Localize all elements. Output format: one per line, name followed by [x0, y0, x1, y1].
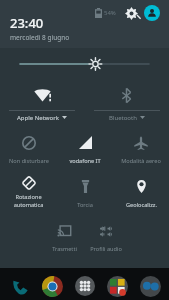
button[interactable]: Settings [123, 5, 139, 21]
button[interactable]: Phone [7, 273, 33, 299]
button[interactable]: Profili audio [85, 216, 127, 260]
button[interactable]: Brightness [0, 48, 169, 80]
button[interactable]: Torcia [57, 172, 113, 216]
button[interactable]: Google folder [104, 273, 130, 299]
button[interactable]: Apple Network [0, 80, 84, 124]
staticText: 54% [104, 9, 116, 17]
staticText: Bluetooth [109, 114, 137, 122]
button[interactable]: Apps [72, 273, 98, 299]
staticText: Geolocalizz. [126, 201, 157, 209]
button[interactable]: Modalità aereo [113, 128, 169, 172]
button[interactable]: Rotazione automatica [0, 172, 57, 216]
button[interactable]: Chrome [39, 273, 65, 299]
staticText: Apple Network [17, 114, 59, 122]
staticText: Modalità aereo [121, 157, 161, 165]
staticText: Trasmetti [52, 245, 77, 253]
button[interactable]: Bluetooth [84, 80, 169, 124]
staticText: Profili audio [90, 245, 122, 253]
staticText: vodafone IT [69, 157, 101, 165]
button[interactable]: Geolocalizz. [113, 172, 169, 216]
button[interactable]: vodafone IT [57, 128, 113, 172]
staticText: mercoledì 8 giugno [10, 33, 70, 42]
button[interactable]: Trasmetti [43, 216, 85, 260]
staticText: Torcia [77, 201, 93, 209]
staticText: Rotazione automatica [1, 193, 56, 209]
button[interactable]: Non disturbare [0, 128, 57, 172]
button[interactable]: User profile [144, 5, 160, 21]
button[interactable]: 23:40 [10, 14, 70, 42]
staticText: 23:40 [10, 14, 44, 32]
button[interactable]: Skype [137, 273, 163, 299]
staticText: Non disturbare [9, 157, 49, 165]
